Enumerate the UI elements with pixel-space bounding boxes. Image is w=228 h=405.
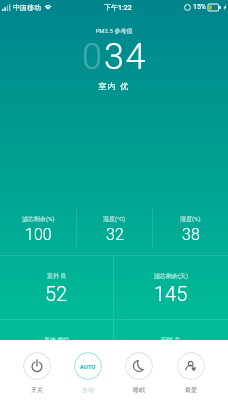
staticText: 睡眠 [133, 386, 145, 394]
staticText: 52 [45, 282, 68, 305]
staticText: 下午1:22 [104, 3, 132, 12]
staticText: 145 [154, 282, 188, 305]
staticText: 38 [182, 225, 200, 244]
staticText: 湿度(%) [180, 215, 201, 223]
staticText: PM2.5 参考值 [0, 27, 228, 35]
button[interactable]: Auto mode [62, 352, 113, 394]
button[interactable]: Favorite [165, 352, 217, 394]
staticText: 室内 优 [0, 81, 228, 91]
staticText: 100 [25, 225, 52, 244]
staticText: 滤芯剩余(天) [154, 272, 189, 280]
staticText: 开关 [31, 386, 43, 394]
button[interactable]: Sleep [113, 352, 165, 394]
staticText: 温度(°C) [103, 215, 126, 223]
staticText: 34 [104, 36, 147, 78]
staticText: 风速 档位 [44, 336, 70, 344]
staticText: 室外 良 [47, 272, 67, 280]
staticText: 最爱 [185, 386, 197, 394]
staticText: 0 [82, 36, 104, 78]
staticText: 15% [193, 3, 206, 11]
staticText: 自动 [82, 386, 94, 394]
staticText: 定时 关 [161, 336, 181, 344]
staticText: 中国移动 [13, 3, 41, 12]
staticText: AUTO [80, 363, 96, 370]
button[interactable]: Power [11, 352, 62, 394]
staticText: 32 [106, 225, 124, 244]
staticText: 滤芯剩余(%) [22, 215, 55, 223]
